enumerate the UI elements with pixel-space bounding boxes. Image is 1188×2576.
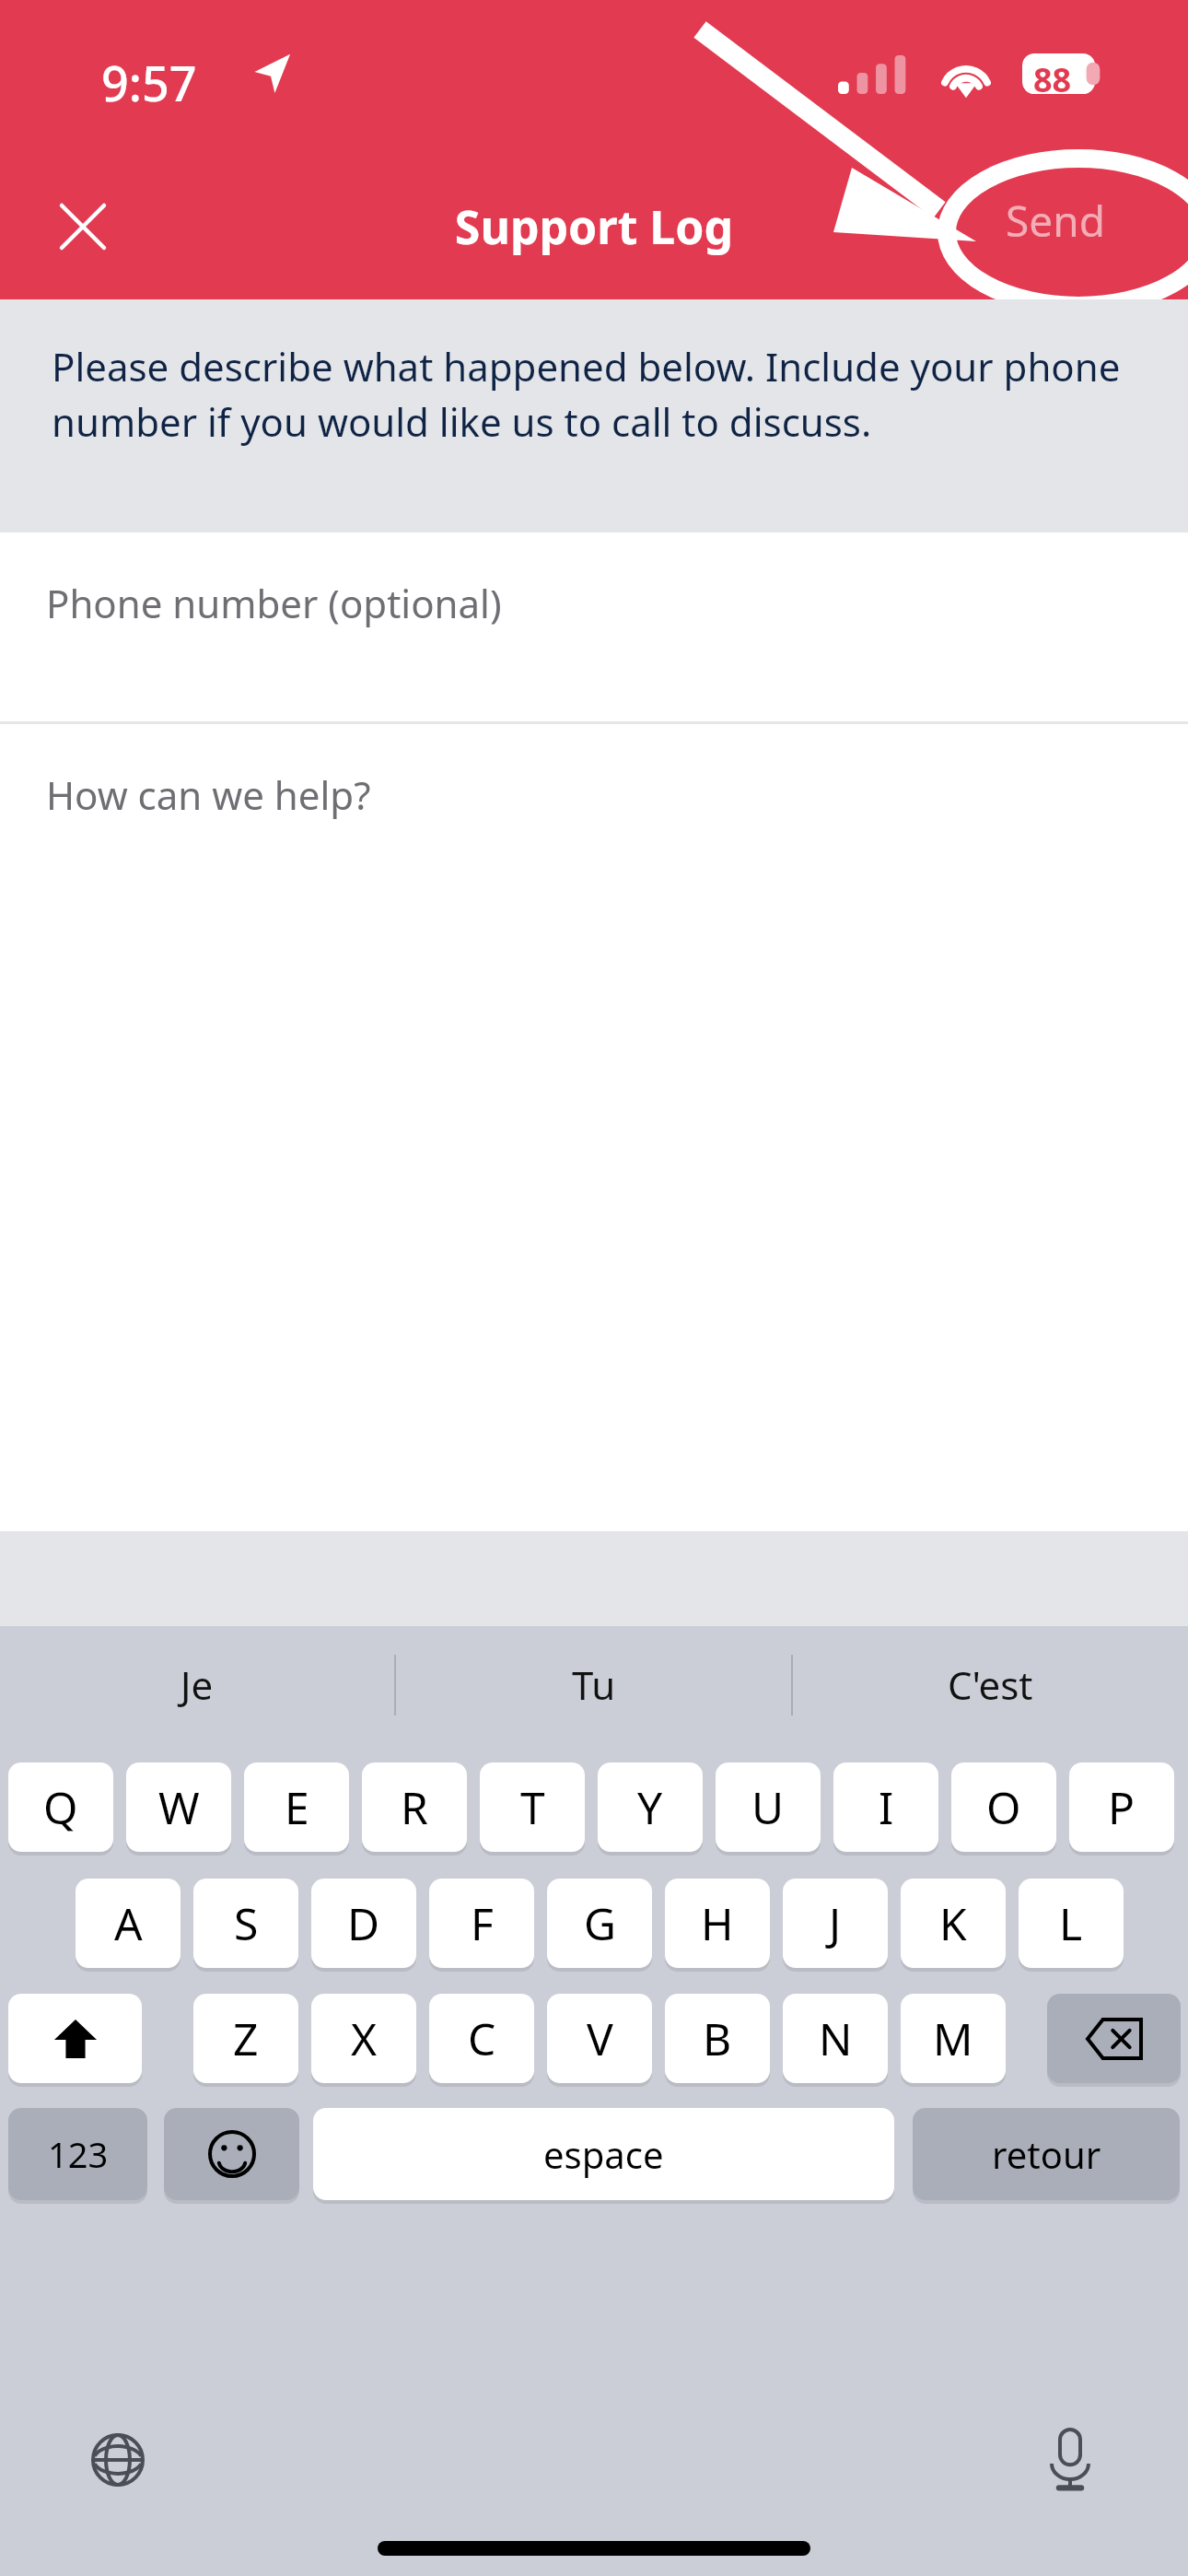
staticText: espace: [543, 2129, 664, 2179]
button[interactable]: Q: [8, 1762, 113, 1852]
button[interactable]: R: [362, 1762, 467, 1852]
staticText: V: [587, 2008, 613, 2068]
button[interactable]: Send: [996, 184, 1114, 257]
staticText: N: [819, 2008, 853, 2068]
button[interactable]: H: [665, 1879, 770, 1968]
staticText: D: [347, 1893, 380, 1953]
button[interactable]: M: [901, 1994, 1006, 2083]
staticText: S: [234, 1893, 259, 1953]
button[interactable]: X: [311, 1994, 416, 2083]
button[interactable]: How can we help?: [0, 724, 1188, 1531]
button[interactable]: D: [311, 1879, 416, 1968]
staticText: Z: [233, 2008, 259, 2068]
button[interactable]: N: [783, 1994, 888, 2083]
staticText: A: [114, 1893, 143, 1953]
button[interactable]: I: [833, 1762, 938, 1852]
staticText: Send: [1006, 192, 1105, 250]
button[interactable]: C: [429, 1994, 534, 2083]
staticText: How can we help?: [46, 768, 371, 821]
staticText: F: [471, 1893, 494, 1953]
staticText: I: [879, 1777, 894, 1837]
staticText: C: [468, 2008, 496, 2068]
button[interactable]: O: [951, 1762, 1056, 1852]
button[interactable]: Phone number (optional): [0, 533, 1188, 721]
button[interactable]: 123: [8, 2108, 147, 2200]
staticText: Y: [637, 1777, 663, 1837]
staticText: H: [701, 1893, 734, 1953]
button[interactable]: S: [193, 1879, 298, 1968]
button[interactable]: A: [76, 1879, 181, 1968]
staticText: M: [933, 2008, 973, 2068]
staticText: L: [1059, 1893, 1083, 1953]
button[interactable]: espace: [313, 2108, 894, 2200]
staticText: retour: [992, 2129, 1101, 2179]
staticText: 88: [1033, 57, 1072, 102]
staticText: E: [285, 1777, 309, 1837]
button[interactable]: Dictate: [1024, 2414, 1116, 2506]
button[interactable]: Z: [193, 1994, 298, 2083]
staticText: B: [703, 2008, 732, 2068]
button[interactable]: F: [429, 1879, 534, 1968]
button[interactable]: V: [547, 1994, 652, 2083]
button[interactable]: Close: [39, 182, 127, 271]
staticText: R: [401, 1777, 428, 1837]
button[interactable]: C'est: [793, 1626, 1188, 1743]
staticText: T: [520, 1777, 545, 1837]
staticText: Support Log: [0, 195, 1188, 258]
button[interactable]: G: [547, 1879, 652, 1968]
button[interactable]: Backspace: [1047, 1994, 1181, 2083]
button[interactable]: Emoji: [164, 2108, 299, 2200]
staticText: G: [584, 1893, 616, 1953]
staticText: Tu: [572, 1658, 616, 1711]
staticText: 123: [48, 2130, 109, 2178]
button[interactable]: Shift: [8, 1994, 142, 2083]
staticText: K: [939, 1893, 967, 1953]
button[interactable]: P: [1069, 1762, 1174, 1852]
button[interactable]: L: [1019, 1879, 1124, 1968]
staticText: 9:57: [101, 50, 197, 115]
button[interactable]: Tu: [396, 1626, 791, 1743]
button[interactable]: Y: [598, 1762, 703, 1852]
button[interactable]: retour: [913, 2108, 1180, 2200]
staticText: O: [986, 1777, 1021, 1837]
button[interactable]: W: [126, 1762, 231, 1852]
staticText: X: [351, 2008, 378, 2068]
button[interactable]: J: [783, 1879, 888, 1968]
staticText: Please describe what happened below. Inc…: [52, 340, 1133, 448]
staticText: P: [1108, 1777, 1136, 1837]
button[interactable]: K: [901, 1879, 1006, 1968]
button[interactable]: Je: [0, 1626, 394, 1743]
staticText: W: [158, 1777, 200, 1837]
staticText: Q: [43, 1777, 78, 1837]
staticText: J: [829, 1893, 842, 1953]
staticText: Je: [181, 1658, 214, 1711]
button[interactable]: T: [480, 1762, 585, 1852]
button[interactable]: B: [665, 1994, 770, 2083]
button[interactable]: Change keyboard language: [72, 2414, 164, 2506]
staticText: Phone number (optional): [46, 577, 502, 629]
button[interactable]: U: [716, 1762, 821, 1852]
staticText: U: [751, 1777, 785, 1837]
staticText: C'est: [948, 1658, 1033, 1711]
button[interactable]: E: [244, 1762, 349, 1852]
